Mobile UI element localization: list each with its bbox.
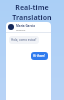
- staticText: Hola, como estas?: [11, 38, 37, 42]
- staticText: Maria Garcia: [16, 24, 35, 28]
- staticText: Hi there!: [33, 54, 46, 58]
- staticText: Real-time: [15, 3, 49, 13]
- staticText: Translation: [12, 13, 52, 23]
- staticText: Spanish: [16, 28, 26, 31]
